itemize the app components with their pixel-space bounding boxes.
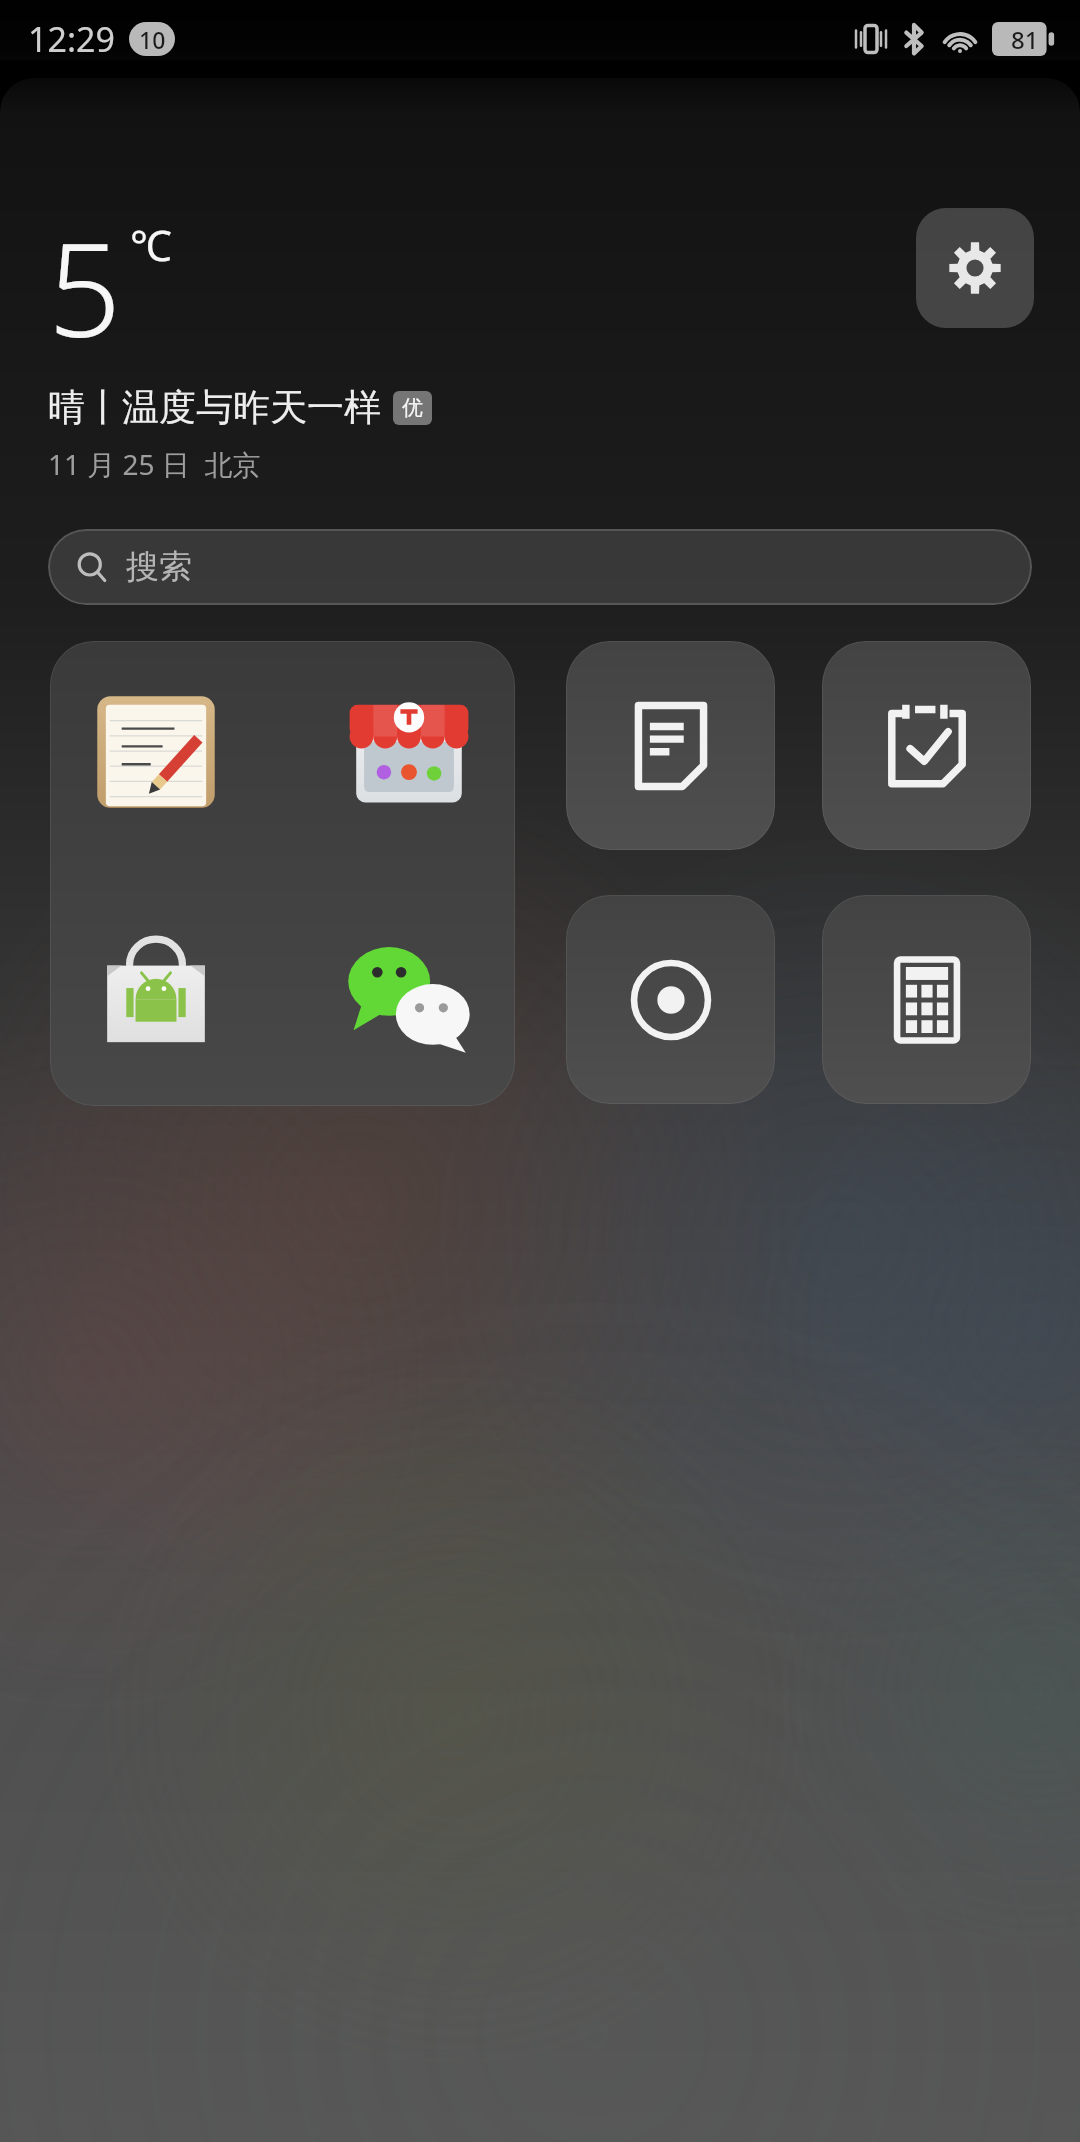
button[interactable]: Notes	[566, 641, 775, 850]
button[interactable]: Notes app	[90, 689, 222, 821]
staticText: 搜索	[126, 546, 192, 588]
staticText: 优	[402, 395, 423, 421]
button[interactable]: WeChat	[343, 926, 475, 1058]
staticText: ℃	[130, 216, 172, 273]
button[interactable]: Calculator	[822, 895, 1031, 1104]
button[interactable]: Tasks	[822, 641, 1031, 850]
staticText: 10	[139, 24, 166, 55]
button[interactable]: Recorder	[566, 895, 775, 1104]
staticText: 12:29	[28, 16, 115, 62]
button[interactable]: Coolapk	[90, 926, 222, 1058]
staticText: 晴丨温度与昨天一样	[48, 384, 381, 431]
staticText: 81	[1011, 23, 1039, 56]
button[interactable]: App store	[343, 689, 475, 821]
staticText: 11 月 25 日 北京	[48, 445, 261, 483]
button[interactable]: 搜索	[48, 529, 1032, 605]
button[interactable]: App folder	[50, 641, 515, 1106]
staticText: 5	[48, 200, 122, 374]
button[interactable]: Settings	[916, 208, 1034, 328]
